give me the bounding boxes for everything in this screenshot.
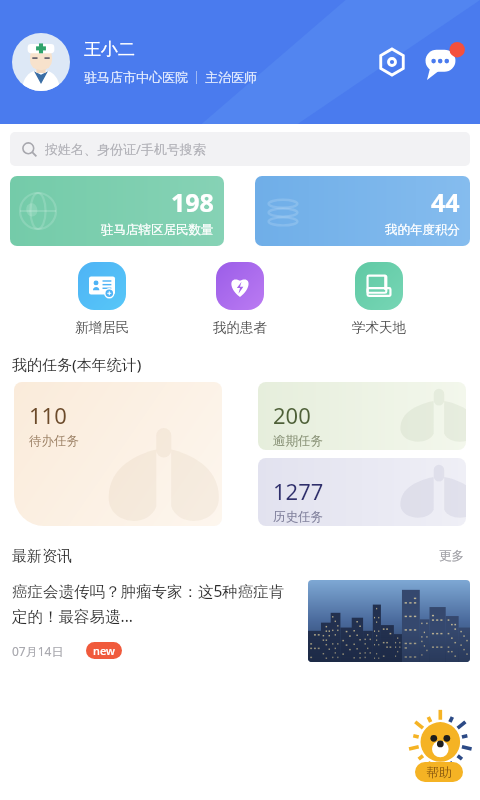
- button[interactable]: 按姓名、身份证/手机号搜索: [10, 132, 470, 166]
- staticText: 更多: [439, 548, 464, 564]
- staticText: 200: [273, 400, 311, 430]
- button[interactable]: 44: [255, 176, 470, 246]
- staticText: 1277: [273, 476, 324, 506]
- button[interactable]: 帮助: [406, 710, 472, 786]
- staticText: 198: [171, 185, 214, 219]
- button[interactable]: 更多: [435, 544, 468, 568]
- button[interactable]: 学术天地: [342, 260, 416, 338]
- staticText: 按姓名、身份证/手机号搜索: [45, 140, 206, 158]
- button[interactable]: 200: [258, 382, 466, 450]
- staticText: 癌症会遗传吗？肿瘤专家：这5种癌症肯定的！最容易遗...: [12, 580, 298, 626]
- button[interactable]: Messages: [422, 40, 466, 84]
- button[interactable]: 癌症会遗传吗？肿瘤专家：这5种癌症肯定的！最容易遗...: [0, 574, 480, 662]
- staticText: 驻马店市中心医院: [84, 69, 188, 85]
- button[interactable]: Profile: [12, 33, 70, 91]
- staticText: new: [93, 643, 115, 658]
- button[interactable]: 198: [10, 176, 224, 246]
- staticText: 逾期任务: [273, 433, 323, 449]
- staticText: 历史任务: [273, 509, 323, 525]
- button[interactable]: 110: [14, 382, 222, 526]
- staticText: 我的年度积分: [385, 222, 460, 238]
- staticText: 帮助: [426, 764, 452, 780]
- staticText: 待办任务: [29, 433, 79, 449]
- staticText: 07月14日: [12, 643, 64, 659]
- staticText: 学术天地: [352, 319, 406, 336]
- button[interactable]: 我的患者: [203, 260, 277, 338]
- staticText: 王小二: [84, 39, 135, 60]
- staticText: 最新资讯: [12, 547, 72, 566]
- staticText: 110: [29, 400, 67, 430]
- staticText: 我的任务(本年统计): [12, 354, 142, 374]
- staticText: 44: [431, 185, 460, 219]
- staticText: 我的患者: [213, 319, 267, 336]
- button[interactable]: 新增居民: [65, 260, 139, 338]
- button[interactable]: 1277: [258, 458, 466, 526]
- staticText: 主治医师: [205, 69, 257, 85]
- staticText: 新增居民: [75, 319, 129, 336]
- button[interactable]: Scan: [372, 42, 412, 82]
- staticText: 驻马店辖区居民数量: [101, 222, 214, 238]
